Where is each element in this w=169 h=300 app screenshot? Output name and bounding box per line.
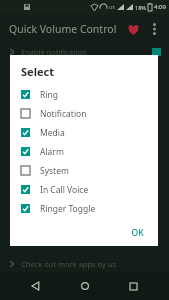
button[interactable]: Check out more apps by us <box>0 256 169 272</box>
button[interactable]: System <box>10 161 158 180</box>
staticText: System <box>40 165 69 177</box>
staticText: OK <box>131 227 144 239</box>
staticText: Notification <box>40 108 87 120</box>
staticText: Media <box>40 127 65 139</box>
staticText: Ring <box>40 89 58 101</box>
staticText: Quick Volume Control <box>9 22 117 36</box>
button[interactable]: Enable notification <box>0 44 169 60</box>
staticText: Alarm <box>40 146 64 158</box>
button[interactable]: Ringer Toggle <box>10 199 158 218</box>
button[interactable]: Back <box>23 273 49 299</box>
staticText: Select <box>21 64 54 79</box>
staticText: 4:09 <box>154 3 166 11</box>
button[interactable]: Favorite <box>122 18 144 40</box>
staticText: LTE <box>109 5 115 10</box>
button[interactable]: If you like, please rate app <box>0 230 169 246</box>
button[interactable]: Alarm <box>10 142 158 161</box>
button[interactable]: Notification <box>10 104 158 123</box>
button[interactable]: Ring <box>10 85 158 104</box>
staticText: Enable notification <box>21 47 87 57</box>
button[interactable]: OK <box>125 224 150 242</box>
staticText: Ringer Toggle <box>40 203 96 215</box>
button[interactable]: Media <box>10 123 158 142</box>
button[interactable]: Recent apps <box>120 273 146 299</box>
staticText: 18% <box>135 4 146 11</box>
button[interactable]: More options <box>144 19 164 39</box>
button[interactable]: Home <box>72 273 98 299</box>
button[interactable]: In Call Voice <box>10 180 158 199</box>
staticText: In Call Voice <box>40 184 89 196</box>
staticText: Check out more apps by us <box>21 259 117 269</box>
